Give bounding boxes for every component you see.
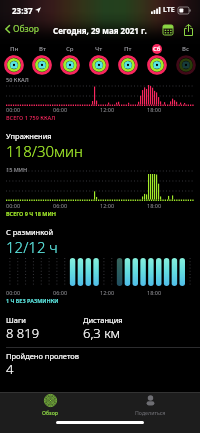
button[interactable]: Обзор: [0, 21, 45, 37]
staticText: 06:00: [53, 289, 68, 296]
staticText: 06:00: [53, 202, 68, 209]
staticText: 118/30мин: [6, 141, 83, 161]
button[interactable]: Ср: [56, 44, 84, 75]
staticText: Вс: [182, 45, 190, 53]
staticText: Ср: [66, 45, 74, 53]
button[interactable]: Calendar: [160, 22, 176, 38]
button[interactable]: Поделиться: [100, 392, 200, 421]
staticText: Поделиться: [135, 409, 166, 416]
staticText: ВСЕГО 9 Ч 18 МИН: [6, 210, 56, 217]
staticText: Вт: [39, 45, 46, 53]
staticText: Упражнения: [6, 131, 52, 141]
button[interactable]: Сб: [142, 44, 171, 75]
staticText: 18:00: [147, 106, 162, 113]
staticText: Пн: [10, 45, 19, 53]
staticText: 6,3 км: [83, 324, 121, 342]
staticText: Обзор: [42, 409, 59, 416]
button[interactable]: Вс: [171, 44, 200, 75]
staticText: 00:00: [6, 289, 21, 296]
staticText: LTE: [163, 5, 175, 15]
button[interactable]: Вт: [28, 44, 56, 75]
staticText: 00:00: [6, 106, 21, 113]
staticText: 06:00: [53, 106, 68, 113]
staticText: 12/12 ч: [6, 237, 58, 257]
button[interactable]: Пн: [0, 44, 28, 75]
button[interactable]: Share: [180, 22, 196, 38]
staticText: 1 Ч БЕЗ РАЗМИНКИ: [6, 297, 59, 304]
staticText: 12:00: [100, 289, 115, 296]
staticText: Обзор: [13, 23, 39, 35]
staticText: 50 ККАЛ: [6, 76, 29, 83]
staticText: ВСЕГО 1 759 ККАЛ: [6, 114, 56, 121]
staticText: 12:00: [100, 202, 115, 209]
button[interactable]: Чт: [84, 44, 113, 75]
staticText: 4: [6, 360, 14, 378]
staticText: 8 819: [6, 324, 40, 342]
button[interactable]: Пт: [113, 44, 142, 75]
staticText: Сб: [153, 45, 161, 53]
staticText: Шаги: [6, 315, 26, 325]
staticText: 18:00: [147, 202, 162, 209]
staticText: Пройдено пролетов: [6, 351, 79, 361]
button[interactable]: Обзор: [0, 392, 100, 421]
staticText: 12:00: [100, 106, 115, 113]
staticText: С разминкой: [6, 227, 54, 237]
staticText: 15 МИН: [6, 166, 28, 173]
staticText: Чт: [95, 45, 103, 53]
staticText: Пт: [124, 45, 132, 53]
staticText: 00:00: [6, 202, 21, 209]
staticText: Дистанция: [83, 315, 123, 325]
staticText: Сегодня, 29 мая 2021 г.: [53, 25, 147, 36]
staticText: 18:00: [147, 289, 162, 296]
staticText: 23:37: [12, 5, 33, 16]
